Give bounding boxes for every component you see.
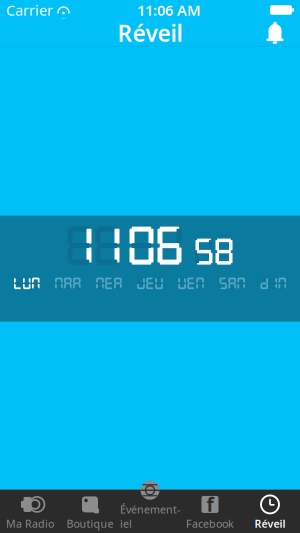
staticText: Événementiel billetterie	[120, 502, 180, 533]
staticText: Réveil	[254, 516, 285, 531]
staticText: Facebook	[186, 516, 234, 531]
staticText: Ma Radio	[6, 516, 54, 531]
staticText: 11:06 AM	[137, 0, 201, 20]
staticText: Boutique	[66, 516, 113, 531]
button[interactable]: Réveil	[240, 490, 300, 533]
button[interactable]: f	[180, 490, 240, 533]
staticText: Carrier	[6, 0, 53, 20]
button[interactable]: Boutique	[60, 490, 120, 533]
staticText: f	[206, 492, 213, 517]
button[interactable]: Alarme	[255, 20, 295, 46]
staticText: Réveil	[117, 18, 182, 48]
button[interactable]: Ma Radio	[0, 490, 60, 533]
button[interactable]: Événementiel billetterie	[120, 490, 180, 533]
